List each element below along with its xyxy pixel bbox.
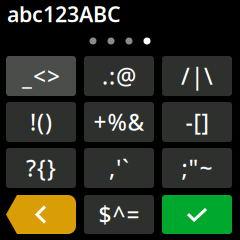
button[interactable]: Delete (6, 195, 76, 234)
staticText: +%& (93, 107, 144, 137)
button[interactable]: ;"~ (162, 148, 232, 188)
staticText: _<> (22, 61, 60, 91)
staticText: $^= (98, 199, 139, 229)
button[interactable]: $^= (84, 195, 154, 234)
button[interactable]: .:@ (84, 56, 154, 96)
staticText: abc123ABC (7, 0, 121, 28)
staticText: ?{} (26, 153, 56, 183)
staticText: /|\ (181, 61, 213, 91)
staticText: !() (30, 107, 52, 137)
staticText: -[] (185, 107, 208, 137)
button[interactable]: _<> (6, 56, 76, 96)
button[interactable]: ,'` (84, 148, 154, 188)
button[interactable]: /|\ (162, 56, 232, 96)
button[interactable]: Done (162, 195, 232, 234)
staticText: ;"~ (181, 153, 212, 183)
button[interactable]: !() (6, 102, 76, 142)
button[interactable]: +%& (84, 102, 154, 142)
button[interactable]: -[] (162, 102, 232, 142)
staticText: .:@ (102, 61, 136, 91)
button[interactable]: ?{} (6, 148, 76, 188)
staticText: ,'` (109, 153, 129, 183)
